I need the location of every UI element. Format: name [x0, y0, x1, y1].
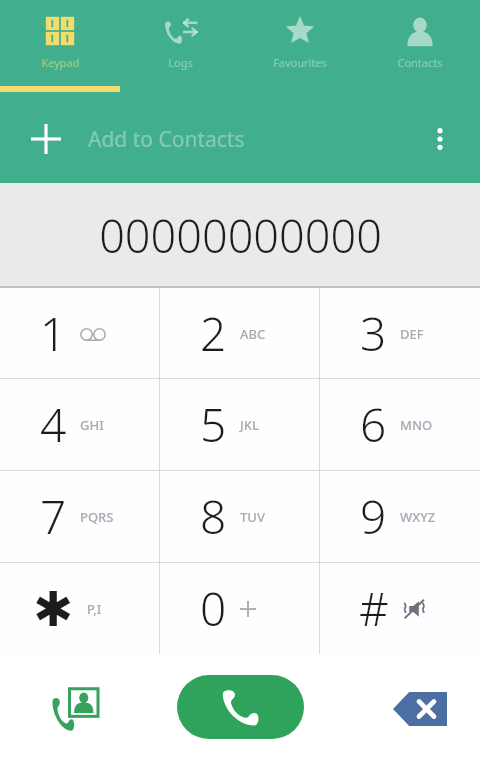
button[interactable]: More options [414, 113, 466, 165]
staticText: 0 [200, 577, 227, 640]
staticText: Add to Contacts [88, 125, 245, 154]
button[interactable]: 9 [320, 471, 480, 562]
button[interactable]: 6 [320, 379, 480, 470]
staticText: WXYZ [400, 508, 436, 526]
button[interactable]: Logs [120, 0, 240, 95]
staticText: ABC [240, 325, 266, 343]
button[interactable]: Video call [42, 676, 108, 742]
staticText: TUV [240, 508, 265, 526]
staticText: MNO [400, 416, 433, 434]
button[interactable]: 3 [320, 288, 480, 378]
staticText: Contacts [397, 55, 443, 70]
staticText: GHI [80, 416, 104, 434]
staticText: ✱ [33, 581, 74, 637]
staticText: P,I [87, 600, 102, 618]
staticText: 9 [360, 485, 387, 548]
staticText: 3 [360, 302, 387, 365]
button[interactable]: Favourites [240, 0, 360, 95]
button[interactable]: 8 [160, 471, 320, 562]
button[interactable]: 4 [0, 379, 160, 470]
staticText: Favourites [273, 55, 327, 70]
staticText: Keypad [41, 55, 80, 70]
staticText: 5 [200, 393, 227, 456]
staticText: 4 [40, 393, 67, 456]
button[interactable]: # [320, 563, 480, 654]
staticText: 1 [40, 302, 67, 365]
button[interactable]: Add to Contacts [18, 111, 74, 167]
staticText: Logs [168, 55, 193, 70]
staticText: DEF [400, 325, 424, 343]
button[interactable]: 2 [160, 288, 320, 378]
staticText: 2 [200, 302, 227, 365]
button[interactable]: Backspace [388, 677, 452, 741]
staticText: 00000000000 [99, 205, 382, 266]
button[interactable]: ✱ [0, 563, 160, 654]
button[interactable]: Keypad [0, 0, 120, 95]
button[interactable]: 0 [160, 563, 320, 654]
staticText: 6 [360, 393, 387, 456]
staticText: JKL [240, 416, 259, 434]
staticText: PQRS [80, 508, 114, 526]
button[interactable]: 7 [0, 471, 160, 562]
button[interactable]: 5 [160, 379, 320, 470]
staticText: 7 [40, 485, 67, 548]
button[interactable]: Contacts [360, 0, 480, 95]
button[interactable]: 1 [0, 288, 160, 378]
staticText: 8 [200, 485, 227, 548]
staticText: # [359, 577, 389, 640]
button[interactable]: Call [177, 675, 304, 739]
